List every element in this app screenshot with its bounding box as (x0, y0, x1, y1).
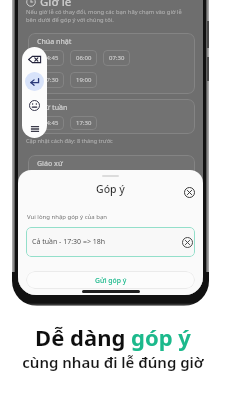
staticText: Giáo xứ (37, 159, 63, 169)
button[interactable]: 19:00 (70, 72, 97, 88)
button[interactable]: 17:30 (70, 116, 97, 130)
staticText: Cả tuần - 17:30 => 18h (32, 237, 180, 247)
staticText: Chúa nhật (37, 37, 72, 47)
button[interactable]: Enter (25, 72, 44, 91)
button[interactable]: 17:30 (37, 72, 64, 88)
button[interactable]: 07:30 (103, 50, 130, 66)
staticText: Gửi góp ý (95, 276, 127, 285)
staticText: Dễ dàng góp ý (35, 322, 191, 352)
staticText: 17:30 (76, 119, 92, 127)
button[interactable]: Đóng (182, 185, 196, 199)
staticText: 17:30 (43, 76, 59, 84)
staticText: 04:45 (43, 119, 59, 127)
button[interactable]: Menu (25, 119, 44, 138)
button[interactable]: 04:45 (37, 50, 64, 66)
button[interactable]: Cả tuần - 17:30 => 18h (26, 227, 195, 257)
button[interactable]: 06:00 (70, 50, 97, 66)
staticText: Nếu giờ lễ có thay đổi, mong các bạn hãy… (26, 8, 182, 24)
staticText: Góp ý (96, 182, 125, 196)
button[interactable]: Gửi góp ý (26, 271, 195, 289)
button[interactable]: Xoá nội dung (180, 235, 194, 249)
staticText: Cập nhật cách đây: 8 tháng trước (26, 137, 113, 145)
staticText: Giờ lễ (40, 0, 72, 10)
staticText: 06:00 (76, 54, 92, 62)
staticText: 19:00 (76, 76, 92, 84)
staticText: 04:45 (43, 54, 59, 62)
button[interactable]: Emoji (25, 96, 44, 115)
staticText: 07:30 (109, 54, 125, 62)
staticText: Thứ tuần (37, 103, 68, 113)
button[interactable]: 04:45 (37, 116, 64, 130)
button[interactable]: Xoá lùi (25, 50, 44, 69)
staticText: Vui lòng nhập góp ý của bạn (27, 213, 107, 221)
staticText: cùng nhau đi lễ đúng giờ (22, 352, 204, 372)
